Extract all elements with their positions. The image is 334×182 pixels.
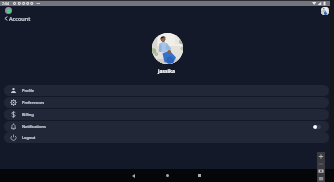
button[interactable]: App logo	[5, 7, 12, 14]
button[interactable]: Emulator controls	[317, 152, 325, 182]
button[interactable]: Home	[162, 170, 173, 181]
staticText: Notifications	[22, 124, 46, 129]
button[interactable]: Account avatar	[321, 7, 329, 15]
staticText: jassika	[158, 68, 176, 75]
staticText: Preferences	[22, 100, 45, 105]
button[interactable]: Profile picture	[152, 33, 183, 64]
staticText: Billing	[22, 112, 34, 117]
button[interactable]: Account	[3, 14, 33, 23]
button[interactable]: Logout	[4, 132, 329, 143]
staticText: 7:04	[2, 1, 10, 6]
button[interactable]: Notifications	[4, 121, 329, 132]
button[interactable]: Profile	[4, 85, 329, 96]
button[interactable]: Billing	[4, 109, 329, 120]
staticText: Account	[9, 15, 31, 23]
button[interactable]: Recents	[194, 170, 205, 181]
button[interactable]: Toggle notifications	[313, 125, 321, 129]
staticText: Logout	[22, 135, 36, 140]
button[interactable]: Preferences	[4, 97, 329, 108]
button[interactable]: Back	[128, 170, 139, 181]
staticText: Profile	[22, 88, 35, 93]
